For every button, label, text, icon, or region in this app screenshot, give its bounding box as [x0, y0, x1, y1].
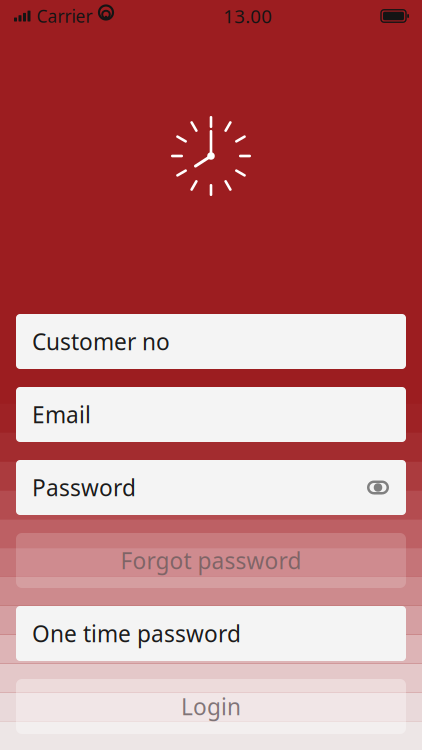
- staticText: Customer no: [32, 326, 170, 356]
- button[interactable]: Email: [16, 387, 406, 442]
- button[interactable]: Login: [16, 679, 406, 734]
- button[interactable]: Password: [16, 460, 406, 515]
- staticText: Email: [32, 399, 91, 429]
- staticText: Login: [181, 691, 241, 721]
- button[interactable]: Forgot password: [16, 533, 406, 588]
- staticText: One time password: [32, 618, 241, 648]
- staticText: Password: [32, 472, 136, 502]
- button[interactable]: One time password: [16, 606, 406, 661]
- staticText: Forgot password: [120, 545, 301, 575]
- button[interactable]: Customer no: [16, 314, 406, 369]
- staticText: Carrier: [36, 4, 92, 27]
- staticText: 13.00: [223, 4, 272, 28]
